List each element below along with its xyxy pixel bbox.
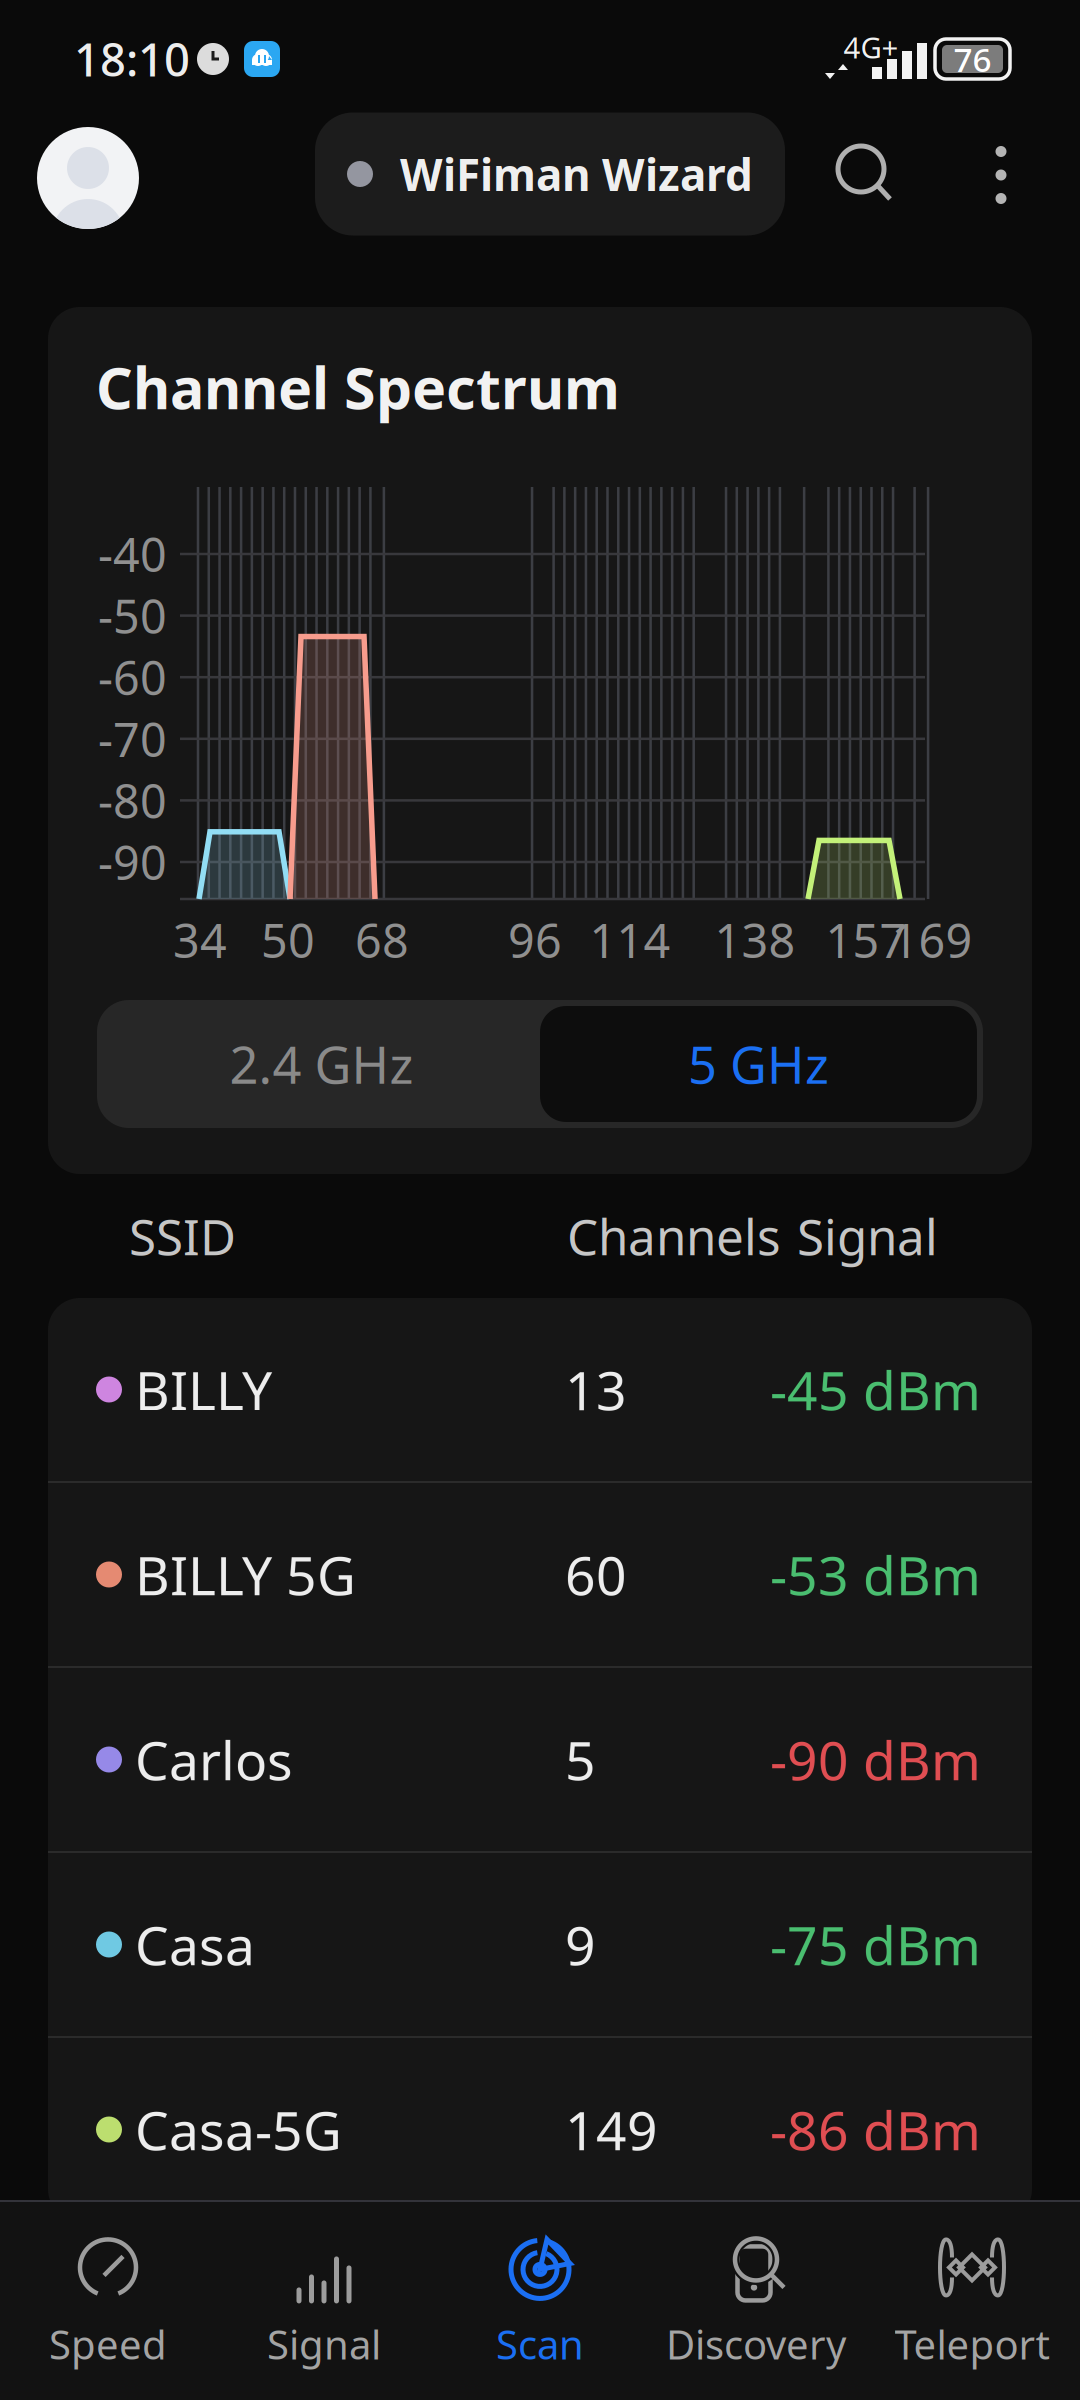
button[interactable]: Signal (216, 2202, 432, 2400)
staticText: -90 (98, 831, 167, 893)
staticText: Discovery (666, 2317, 846, 2370)
staticText: -90 dBm (770, 1724, 981, 1795)
staticText: -60 (98, 646, 167, 708)
button[interactable]: Search (811, 127, 935, 279)
staticText: WiFiman Wizard (400, 145, 753, 203)
staticText: 157 (825, 909, 906, 971)
staticText: -53 dBm (770, 1539, 981, 1610)
staticText: 149 (565, 2094, 658, 2165)
button[interactable]: BILLY (48, 1298, 1032, 1481)
staticText: -45 dBm (770, 1354, 981, 1425)
staticText: 18:10 (74, 29, 190, 89)
button[interactable]: Casa (48, 1853, 1032, 2036)
staticText: Signal (267, 2317, 381, 2370)
button[interactable]: 2.4 GHz (103, 1006, 540, 1122)
staticText: Channel Spectrum (96, 349, 620, 425)
staticText: Channels (567, 1203, 781, 1269)
staticText: -86 dBm (770, 2094, 981, 2165)
staticText: Teleport (894, 2317, 1049, 2370)
button[interactable]: Speed (0, 2202, 216, 2400)
staticText: 138 (714, 909, 795, 971)
staticText: 169 (891, 909, 972, 971)
staticText: Speed (49, 2317, 167, 2370)
staticText: 4G+ (843, 27, 898, 66)
staticText: 114 (589, 909, 670, 971)
button[interactable]: Casa-5G (48, 2038, 1032, 2221)
staticText: 60 (565, 1539, 627, 1610)
staticText: 9 (565, 1909, 596, 1980)
staticText: Signal (797, 1203, 938, 1269)
button[interactable]: WiFiman Wizard (185, 112, 785, 293)
staticText: Casa (135, 1909, 255, 1980)
staticText: -75 dBm (770, 1909, 981, 1980)
button[interactable]: Scan (432, 2202, 648, 2400)
button[interactable]: Discovery (648, 2202, 864, 2400)
staticText: Casa-5G (135, 2094, 342, 2165)
staticText: 76 (953, 37, 991, 81)
staticText: 13 (565, 1354, 627, 1425)
staticText: -70 (98, 708, 167, 770)
button[interactable]: Carlos (48, 1668, 1032, 1851)
staticText: -40 (98, 523, 167, 585)
staticText: 96 (508, 909, 562, 971)
staticText: Carlos (135, 1724, 293, 1795)
staticText: 50 (261, 909, 315, 971)
staticText: -50 (98, 585, 167, 647)
staticText: 34 (173, 909, 227, 971)
staticText: 2.4 GHz (229, 1030, 413, 1098)
staticText: Scan (496, 2317, 584, 2370)
staticText: SSID (129, 1203, 236, 1269)
staticText: 68 (355, 909, 409, 971)
button[interactable]: Teleport (864, 2202, 1080, 2400)
staticText: BILLY (135, 1354, 272, 1425)
button[interactable]: Profile (0, 120, 159, 286)
staticText: -80 (98, 769, 167, 831)
staticText: 5 (565, 1724, 596, 1795)
staticText: 5 GHz (688, 1030, 829, 1098)
button[interactable]: BILLY 5G (48, 1483, 1032, 1666)
button[interactable]: 5 GHz (540, 1006, 977, 1122)
staticText: BILLY 5G (135, 1539, 356, 1610)
button[interactable]: More options (935, 123, 1080, 283)
